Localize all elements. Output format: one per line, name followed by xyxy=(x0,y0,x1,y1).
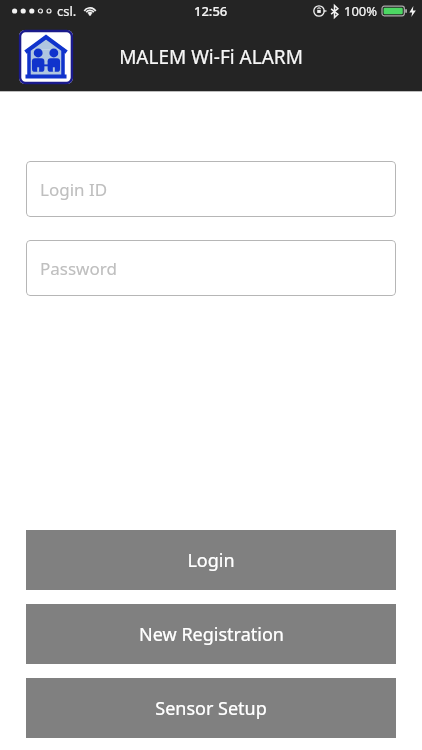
button[interactable]: Sensor Setup xyxy=(26,678,396,738)
button[interactable]: Password xyxy=(26,240,396,296)
staticText: 100% xyxy=(344,2,378,20)
staticText: csl. xyxy=(57,2,77,20)
staticText: Login xyxy=(187,548,235,573)
button[interactable]: New Registration xyxy=(26,604,396,664)
button[interactable]: Login ID xyxy=(26,161,396,217)
staticText: MALEM Wi-Fi ALARM xyxy=(119,44,303,70)
button[interactable]: App logo xyxy=(19,30,73,84)
button[interactable]: Login xyxy=(26,530,396,590)
staticText: Login ID xyxy=(40,178,108,201)
staticText: Sensor Setup xyxy=(155,696,267,721)
staticText: 12:56 xyxy=(194,2,228,20)
staticText: New Registration xyxy=(139,622,284,647)
staticText: Password xyxy=(40,257,117,280)
